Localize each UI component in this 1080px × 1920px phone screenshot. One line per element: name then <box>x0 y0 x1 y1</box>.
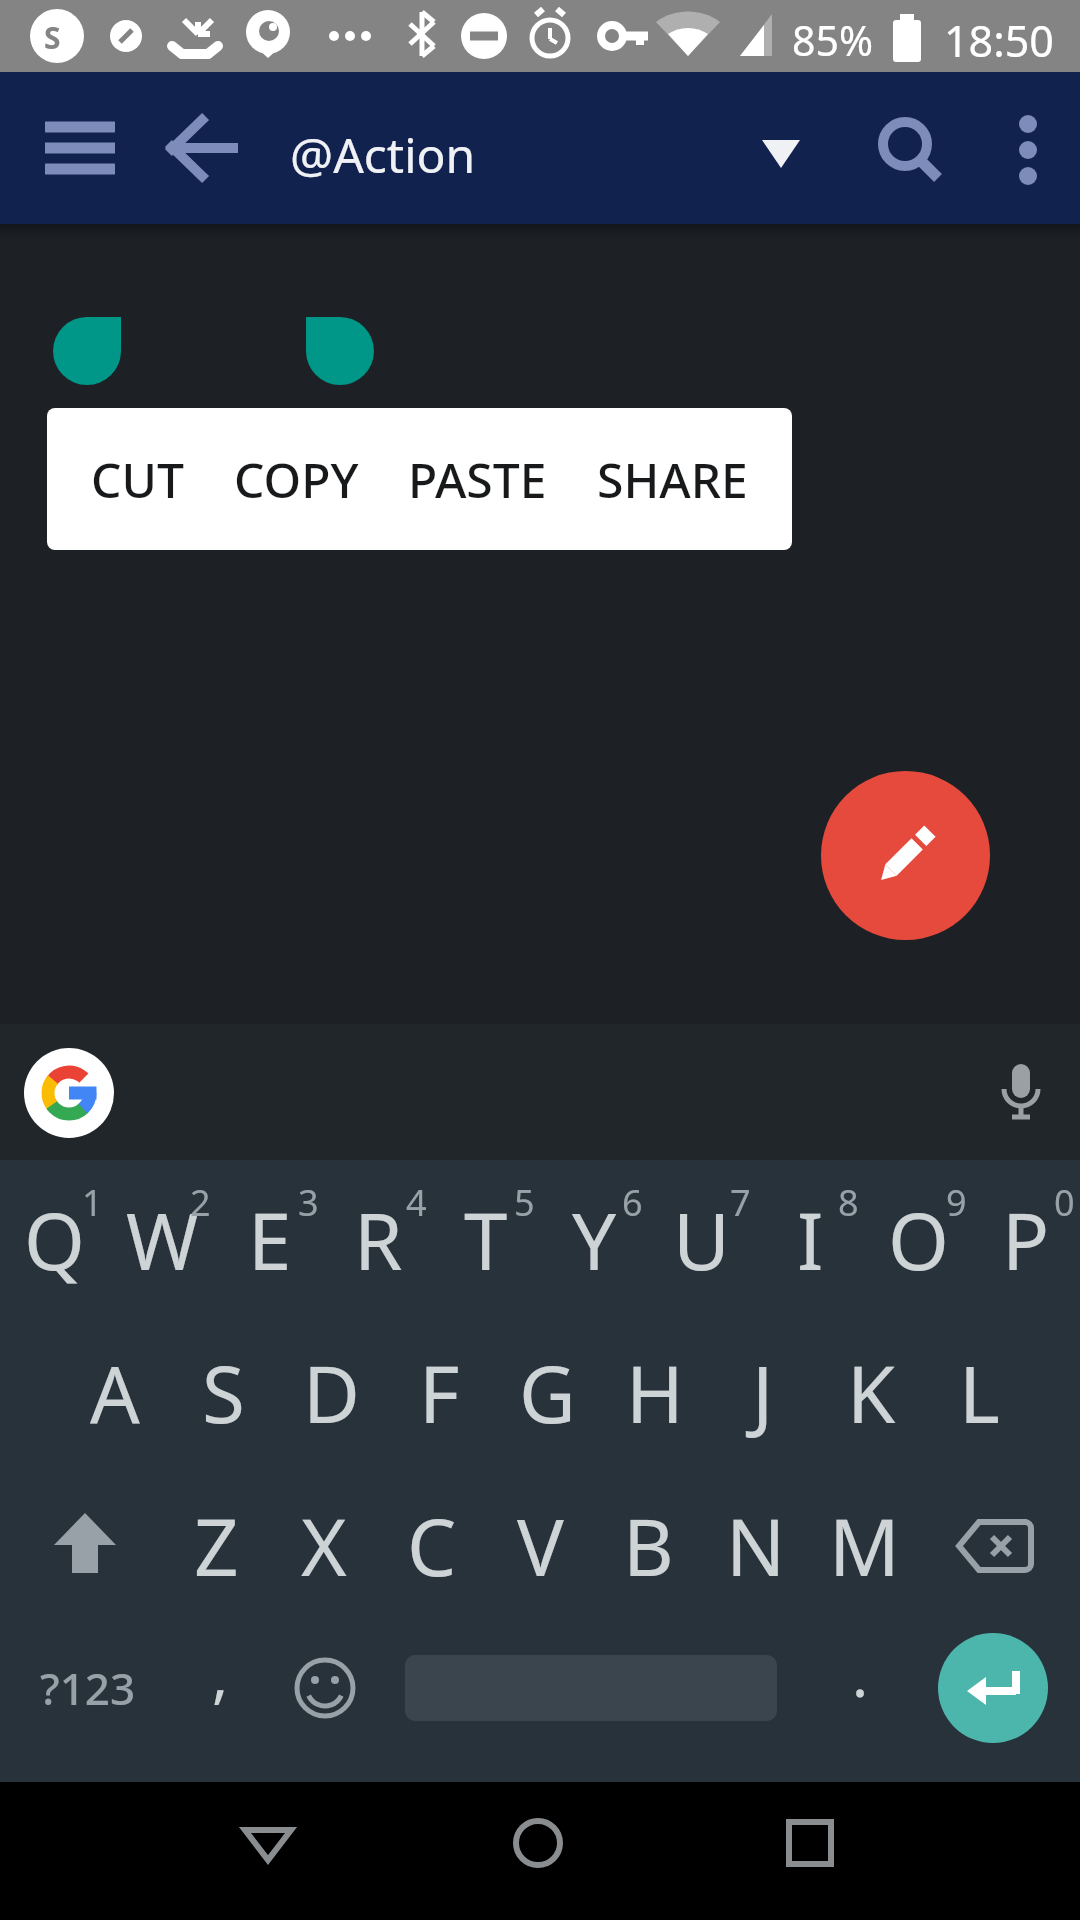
staticText: O <box>888 1187 949 1293</box>
button[interactable] <box>821 771 990 940</box>
staticText: K <box>847 1340 896 1446</box>
staticText: L <box>959 1340 1000 1446</box>
staticText: S <box>202 1340 245 1446</box>
staticText: Q <box>24 1187 85 1293</box>
button[interactable]: Y <box>540 1165 648 1315</box>
staticText: 3 <box>298 1178 319 1222</box>
button[interactable]: P <box>972 1165 1080 1315</box>
staticText: R <box>354 1187 403 1293</box>
staticText: T <box>464 1187 508 1293</box>
staticText: Z <box>194 1493 239 1599</box>
button[interactable] <box>458 1774 618 1912</box>
button[interactable]: X <box>270 1471 378 1621</box>
staticText: CUT <box>91 447 184 512</box>
button[interactable]: C <box>378 1471 486 1621</box>
staticText: X <box>301 1493 347 1599</box>
button[interactable]: ?123 <box>13 1613 163 1763</box>
button[interactable] <box>160 112 250 184</box>
staticText: M <box>829 1493 900 1599</box>
staticText: 4 <box>406 1178 427 1222</box>
button[interactable]: Q <box>0 1165 108 1315</box>
staticText: COPY <box>234 447 359 512</box>
staticText: 7 <box>730 1178 751 1222</box>
staticText: 6 <box>622 1178 643 1222</box>
button[interactable]: W <box>108 1165 216 1315</box>
button[interactable] <box>938 1633 1048 1743</box>
staticText: 18:50 <box>944 11 1054 70</box>
button[interactable] <box>0 1024 136 1160</box>
button[interactable] <box>730 1774 890 1912</box>
button[interactable]: R <box>324 1165 432 1315</box>
staticText: ?123 <box>40 1658 136 1718</box>
staticText: N <box>726 1493 786 1599</box>
button[interactable] <box>862 104 952 194</box>
button[interactable] <box>745 124 817 176</box>
staticText: Y <box>572 1187 617 1293</box>
staticText: B <box>623 1493 674 1599</box>
staticText: , <box>212 1633 229 1715</box>
staticText: 0 <box>1054 1178 1075 1222</box>
button[interactable]: V <box>486 1471 594 1621</box>
button[interactable]: D <box>277 1318 385 1468</box>
button[interactable]: . <box>815 1613 905 1763</box>
staticText: A <box>90 1340 140 1446</box>
button[interactable]: I <box>756 1165 864 1315</box>
staticText: F <box>419 1340 460 1446</box>
button[interactable] <box>990 104 1066 194</box>
button[interactable]: H <box>601 1318 709 1468</box>
button[interactable] <box>956 1024 1080 1160</box>
staticText: 9 <box>946 1178 967 1222</box>
staticText: 1 <box>82 1178 103 1222</box>
button[interactable]: U <box>648 1165 756 1315</box>
button[interactable]: L <box>925 1318 1033 1468</box>
button[interactable]: K <box>817 1318 925 1468</box>
button[interactable]: CUT <box>91 447 184 512</box>
button[interactable]: Z <box>162 1471 270 1621</box>
button[interactable]: SHARE <box>597 447 748 512</box>
staticText: I <box>797 1187 824 1293</box>
staticText: . <box>852 1633 869 1715</box>
staticText: @Action <box>290 122 476 187</box>
button[interactable]: PASTE <box>408 447 547 512</box>
button[interactable] <box>188 1774 348 1912</box>
button[interactable]: , <box>175 1613 265 1763</box>
staticText: PASTE <box>408 447 547 512</box>
staticText: P <box>1002 1187 1050 1293</box>
button[interactable]: A <box>61 1318 169 1468</box>
button[interactable] <box>270 1613 380 1763</box>
staticText: C <box>407 1493 457 1599</box>
staticText: V <box>517 1493 564 1599</box>
staticText: 5 <box>514 1178 535 1222</box>
button[interactable]: J <box>709 1318 817 1468</box>
staticText: W <box>126 1187 199 1293</box>
staticText: SHARE <box>597 447 748 512</box>
button[interactable]: F <box>385 1318 493 1468</box>
staticText: G <box>519 1340 576 1446</box>
staticText: H <box>626 1340 684 1446</box>
staticText: U <box>673 1187 731 1293</box>
button[interactable]: COPY <box>234 447 359 512</box>
button[interactable]: O <box>864 1165 972 1315</box>
staticText: J <box>752 1340 774 1446</box>
staticText: 85% <box>792 12 873 68</box>
button[interactable]: N <box>702 1471 810 1621</box>
button[interactable]: S <box>169 1318 277 1468</box>
button[interactable] <box>15 1471 155 1621</box>
staticText: 2 <box>190 1178 211 1222</box>
button[interactable]: B <box>594 1471 702 1621</box>
button[interactable]: G <box>493 1318 601 1468</box>
staticText: 8 <box>838 1178 859 1222</box>
button[interactable]: E <box>216 1165 324 1315</box>
button[interactable] <box>925 1471 1065 1621</box>
button[interactable] <box>30 117 130 179</box>
button[interactable]: M <box>810 1471 918 1621</box>
staticText: E <box>248 1187 292 1293</box>
staticText: D <box>303 1340 360 1446</box>
button[interactable]: T <box>432 1165 540 1315</box>
staticText: S <box>44 17 61 58</box>
